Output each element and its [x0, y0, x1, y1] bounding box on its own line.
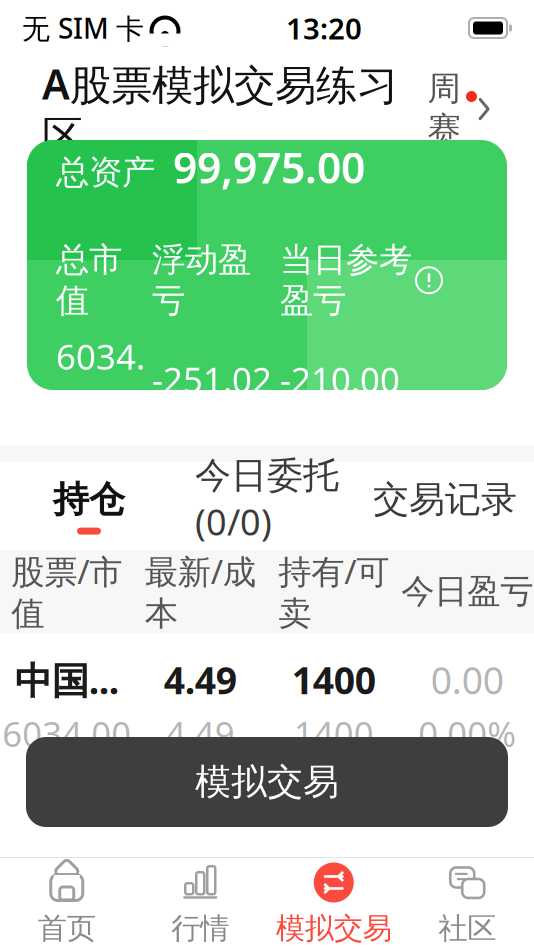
staticText: 交易记录 [373, 477, 517, 522]
button[interactable]: 说明 [412, 265, 446, 295]
button[interactable]: 首页 [0, 858, 133, 950]
button[interactable]: 今日委托(0/0) [178, 462, 356, 550]
staticText: 行情 [171, 910, 229, 946]
staticText: 模拟交易 [195, 760, 339, 804]
staticText: 今日委托(0/0) [195, 453, 339, 545]
staticText: 0.00 [431, 655, 504, 705]
staticText: -251.02 [152, 356, 272, 402]
button[interactable]: 持仓 [0, 462, 178, 550]
staticText: 4.49 [164, 655, 237, 705]
button[interactable]: 周赛 [416, 93, 492, 125]
button[interactable]: 交易记录 [356, 462, 534, 550]
staticText: 4.49 [166, 711, 235, 757]
staticText: 中国... [15, 655, 119, 705]
staticText: 浮动盈亏 [152, 239, 251, 321]
staticText: 持仓 [53, 477, 125, 522]
staticText: 6034.00 [56, 333, 145, 425]
staticText: 1400 [294, 711, 374, 757]
staticText: 首页 [38, 910, 96, 946]
staticText: 总资产 [56, 152, 155, 193]
staticText: 今日盈亏 [401, 571, 533, 612]
staticText: 13:20 [286, 8, 362, 47]
staticText: 最新/成本 [145, 549, 256, 634]
button[interactable]: 模拟交易 [267, 858, 400, 950]
staticText: 总市值 [56, 239, 122, 321]
staticText: 6034.00 [2, 711, 131, 757]
staticText: 99,975.00 [173, 139, 365, 195]
staticText: 持有/可卖 [278, 549, 389, 634]
staticText: 无 SIM 卡 [22, 9, 144, 47]
button[interactable]: 社区 [400, 858, 534, 950]
staticText: 模拟交易 [276, 910, 392, 946]
staticText: 周赛 [427, 68, 460, 150]
staticText: 社区 [438, 910, 496, 946]
staticText: 股票/市值 [11, 549, 122, 634]
button[interactable]: 模拟交易 [26, 737, 508, 827]
staticText: -210.00 [280, 356, 400, 402]
button[interactable]: 行情 [133, 858, 267, 950]
button[interactable]: 中国... [0, 633, 534, 738]
staticText: 当日参考盈亏 [280, 239, 412, 321]
staticText: A股票模拟交易练习区 [42, 56, 398, 162]
staticText: 1400 [292, 655, 376, 705]
staticText: 0.00% [418, 711, 516, 757]
